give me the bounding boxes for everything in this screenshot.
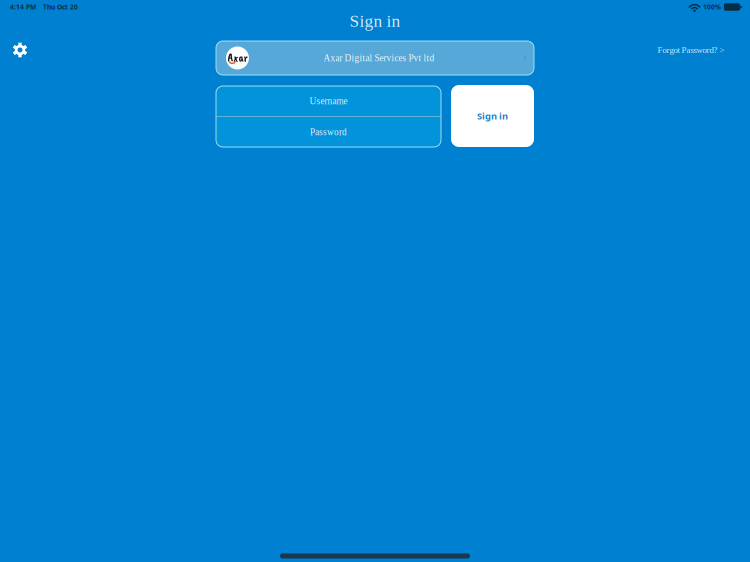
button[interactable]: Sign in xyxy=(451,85,534,147)
staticText: Sign in xyxy=(477,110,508,122)
staticText: Forgot Password? > xyxy=(657,45,724,55)
button[interactable]: Username xyxy=(216,86,441,116)
staticText: Axar Digital Services Pvt ltd xyxy=(323,53,434,63)
staticText: Sign in xyxy=(349,11,400,31)
button[interactable]: Axar Digital Services Pvt ltd xyxy=(216,41,534,75)
staticText: 4:14 PM xyxy=(10,3,36,11)
button[interactable]: Settings xyxy=(4,34,36,66)
button[interactable]: Forgot Password? > xyxy=(651,40,730,60)
staticText: Username xyxy=(309,96,347,106)
staticText: 100% xyxy=(703,3,721,11)
button[interactable]: Password xyxy=(216,117,441,147)
staticText: Password xyxy=(310,127,347,137)
staticText: Axar xyxy=(227,50,247,65)
staticText: Thu Oct 20 xyxy=(43,3,78,11)
